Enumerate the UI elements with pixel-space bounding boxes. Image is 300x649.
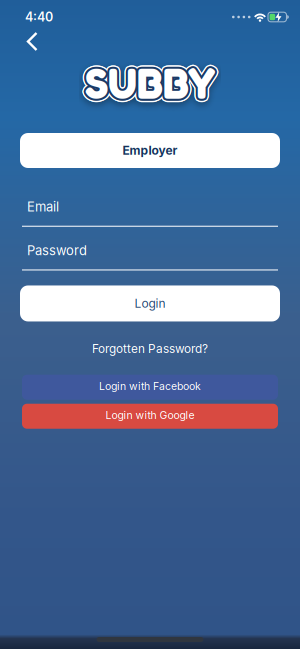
staticText: SUBBY xyxy=(85,54,215,105)
staticText: Employer xyxy=(122,143,177,158)
staticText: SUBBY xyxy=(83,57,213,109)
staticText: SUBBY xyxy=(83,55,213,106)
staticText: 4:40 xyxy=(25,9,53,24)
staticText: SUBBY xyxy=(82,58,212,110)
staticText: SUBBY xyxy=(86,54,216,106)
staticText: SUBBY xyxy=(85,61,215,112)
staticText: SUBBY xyxy=(87,57,217,109)
staticText: SUBBY xyxy=(88,56,218,107)
button[interactable]: Login with Facebook xyxy=(22,375,278,400)
staticText: SUBBY xyxy=(86,60,216,112)
staticText: SUBBY xyxy=(82,57,212,109)
staticText: SUBBY xyxy=(86,59,216,110)
staticText: SUBBY xyxy=(82,56,212,107)
staticText: SUBBY xyxy=(85,59,215,111)
staticText: SUBBY xyxy=(88,58,218,110)
button[interactable]: Back xyxy=(0,31,36,52)
staticText: Email xyxy=(27,199,59,215)
staticText: Login with Google xyxy=(105,409,194,422)
button[interactable]: Forgotten Password? xyxy=(92,341,208,356)
staticText: Password xyxy=(27,243,87,258)
staticText: Login with Facebook xyxy=(99,380,201,393)
button[interactable]: Employer xyxy=(20,133,280,168)
staticText: SUBBY xyxy=(87,60,217,111)
staticText: SUBBY xyxy=(87,55,217,106)
staticText: SUBBY xyxy=(84,59,214,110)
staticText: SUBBY xyxy=(86,56,216,107)
staticText: SUBBY xyxy=(84,60,214,112)
staticText: SUBBY xyxy=(85,55,215,107)
staticText: Forgotten Password? xyxy=(92,341,208,356)
staticText: SUBBY xyxy=(88,57,218,109)
staticText: SUBBY xyxy=(84,54,214,106)
button[interactable]: Login with Google xyxy=(22,404,278,429)
staticText: SUBBY xyxy=(83,60,213,111)
button[interactable]: Password xyxy=(22,243,278,270)
button[interactable]: Login xyxy=(20,285,280,321)
staticText: SUBBY xyxy=(85,57,215,109)
button[interactable]: Email xyxy=(22,199,278,227)
staticText: Login xyxy=(134,296,165,311)
staticText: SUBBY xyxy=(84,56,214,107)
